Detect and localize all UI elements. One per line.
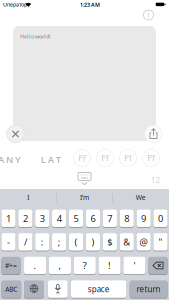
staticText: / [24, 236, 27, 248]
staticText: 5 [74, 212, 79, 224]
staticText: ; [58, 236, 61, 248]
button[interactable]: 3 [35, 209, 49, 227]
button[interactable]: Share [145, 125, 162, 143]
staticText: @ [140, 236, 148, 248]
staticText: ( [75, 236, 78, 248]
staticText: L A T [41, 153, 61, 166]
staticText: Hello world! [20, 33, 50, 40]
button[interactable]: / [18, 233, 32, 251]
button[interactable]: . [24, 256, 46, 275]
button[interactable]: Next keyboard [24, 280, 44, 298]
staticText: & [123, 236, 130, 248]
staticText: i [147, 10, 149, 20]
staticText: ' [133, 259, 135, 272]
button[interactable]: #+= [1, 256, 21, 275]
staticText: #+= [5, 261, 17, 270]
button[interactable]: - [1, 233, 16, 251]
staticText: 9 [141, 212, 146, 224]
staticText: 3 [40, 212, 45, 224]
button[interactable]: A N Y [0, 153, 21, 166]
button[interactable]: " [153, 233, 168, 251]
button[interactable]: $ [103, 233, 117, 251]
button[interactable]: Font style 2 [96, 149, 113, 166]
staticText: . [34, 259, 37, 272]
button[interactable]: @ [136, 233, 151, 251]
staticText: Ff [101, 154, 109, 162]
button[interactable]: 6 [86, 209, 100, 227]
staticText: ABC [5, 285, 17, 294]
staticText: ? [83, 259, 87, 272]
button[interactable]: ' [123, 256, 145, 275]
staticText: 1:23 AM [80, 1, 100, 8]
button[interactable]: 0 [153, 209, 168, 227]
staticText: return [137, 284, 161, 294]
button[interactable]: L A T [41, 153, 61, 166]
staticText: 0 [158, 212, 163, 224]
staticText: Ff [124, 154, 132, 162]
button[interactable]: 8 [120, 209, 134, 227]
staticText: - [7, 236, 10, 248]
button[interactable]: 1 [1, 209, 16, 227]
button[interactable]: 7 [103, 209, 117, 227]
button[interactable]: ! [98, 256, 121, 275]
staticText: ! [108, 259, 111, 272]
button[interactable]: We [114, 190, 168, 204]
button[interactable]: & [120, 233, 134, 251]
button[interactable]: I’m [57, 190, 111, 204]
staticText: $ [107, 236, 112, 248]
staticText: We [136, 193, 146, 202]
button[interactable]: ? [74, 256, 96, 275]
staticText: 7 [107, 212, 112, 224]
staticText: " [158, 236, 162, 248]
button[interactable]: Hide keyboard [76, 170, 92, 186]
staticText: space [88, 284, 110, 294]
button[interactable]: Close [7, 125, 24, 143]
button[interactable]: Delete [148, 256, 168, 275]
button[interactable]: Font style 1 [73, 149, 90, 166]
button[interactable]: 4 [52, 209, 66, 227]
button[interactable]: , [49, 256, 71, 275]
staticText: 4 [57, 212, 62, 224]
staticText: A N Y [0, 153, 21, 166]
button[interactable]: I [1, 190, 55, 204]
staticText: 8 [124, 212, 129, 224]
staticText: Ff [147, 154, 155, 162]
staticText: 12 [150, 175, 160, 185]
staticText: Ff [78, 154, 86, 162]
button[interactable]: Dictate [48, 280, 68, 298]
button[interactable]: ABC [1, 280, 21, 298]
button[interactable]: : [35, 233, 49, 251]
staticText: I’m [80, 193, 89, 202]
button[interactable]: ) [86, 233, 100, 251]
button[interactable]: space [71, 280, 126, 298]
button[interactable]: 9 [136, 209, 151, 227]
staticText: 6 [90, 212, 95, 224]
button[interactable]: Info [143, 9, 154, 20]
button[interactable]: ( [69, 233, 83, 251]
button[interactable]: return [130, 280, 168, 298]
button[interactable]: ; [52, 233, 66, 251]
button[interactable]: Font style 4 [142, 149, 159, 166]
button[interactable]: Font style 3 [119, 149, 136, 166]
button[interactable]: 5 [69, 209, 83, 227]
button[interactable]: 2 [18, 209, 32, 227]
staticText: 1 [6, 212, 11, 224]
staticText: : [41, 236, 44, 248]
staticText: 2 [23, 212, 28, 224]
staticText: ) [91, 236, 94, 248]
staticText: Оператор [3, 1, 27, 8]
staticText: I [27, 193, 29, 202]
staticText: , [58, 259, 61, 272]
